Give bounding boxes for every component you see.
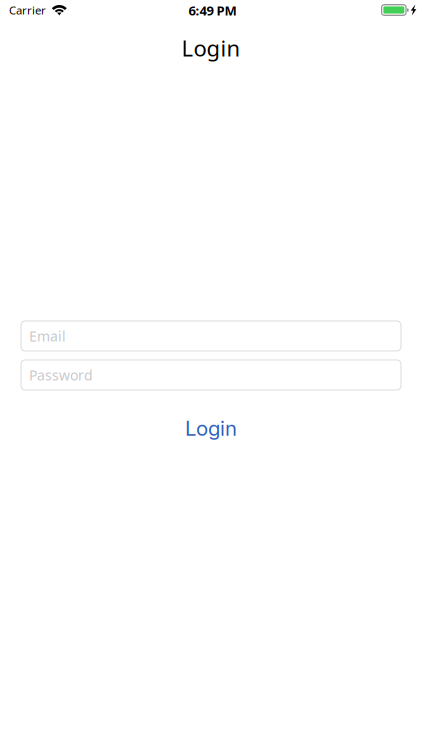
button[interactable]: Password [21,360,401,390]
staticText: Email [29,326,66,345]
staticText: Login [181,33,240,63]
staticText: 6:49 PM [188,2,236,19]
staticText: Password [29,365,93,384]
staticText: Carrier [9,2,46,18]
button[interactable]: Email [21,321,401,351]
staticText: Login [185,416,237,441]
button[interactable]: Login [145,390,277,453]
